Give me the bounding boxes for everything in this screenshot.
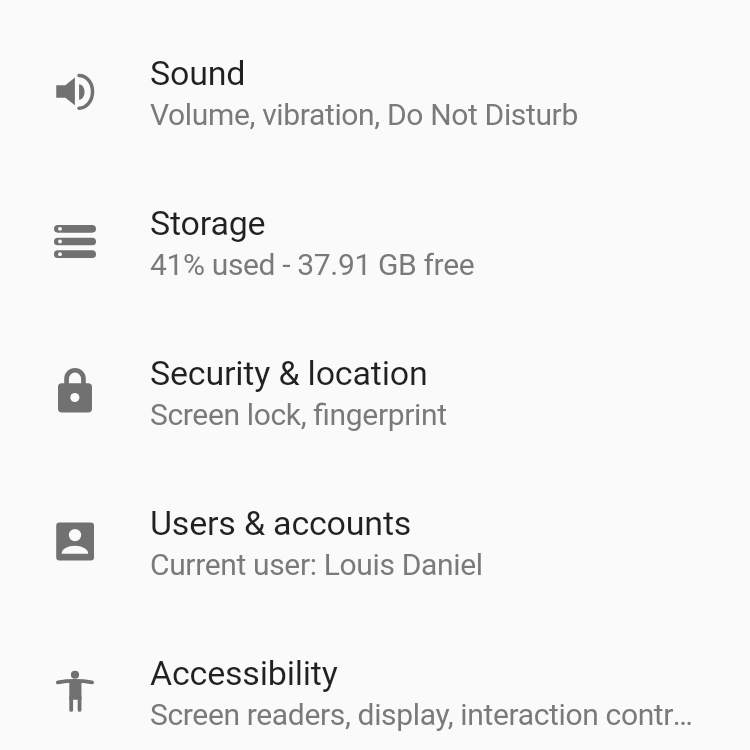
staticText: Security & location (150, 353, 428, 393)
other: Storage (0, 216, 150, 266)
button[interactable]: Security (0, 316, 750, 466)
staticText: Users & accounts (150, 503, 412, 543)
other: Accessibility (0, 666, 150, 716)
staticText: Sound (150, 53, 246, 93)
other: Users (0, 516, 150, 566)
button[interactable]: Sound (0, 16, 750, 166)
other: Security (0, 366, 150, 416)
staticText: Volume, vibration, Do Not Disturb (150, 97, 578, 132)
button[interactable]: Users (0, 466, 750, 616)
staticText: 41% used - 37.91 GB free (150, 247, 475, 282)
staticText: Current user: Louis Daniel (150, 547, 483, 582)
staticText: Accessibility (150, 653, 338, 693)
other: Sound (0, 66, 150, 116)
button[interactable]: Accessibility (0, 616, 750, 750)
staticText: Screen lock, fingerprint (150, 397, 447, 432)
staticText: Storage (150, 203, 266, 243)
button[interactable]: Storage (0, 166, 750, 316)
staticText: Screen readers, display, interaction con… (150, 697, 694, 732)
